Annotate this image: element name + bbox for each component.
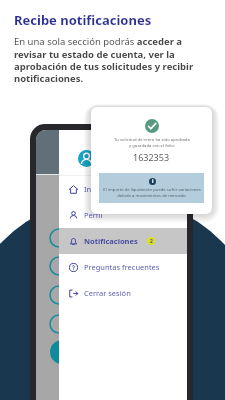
button[interactable]: Perfil de usuario [78, 150, 95, 167]
staticText: 2 [150, 238, 153, 245]
button[interactable]: Perfil [59, 202, 187, 228]
staticText: El importe de liquidación puede sufrir v… [103, 187, 201, 199]
button[interactable]: Preguntas frecuentes [59, 254, 187, 280]
staticText: Preguntas frecuentes [84, 262, 160, 272]
button[interactable]: Notificaciones [59, 228, 187, 254]
button[interactable]: Cerrar sesión [59, 280, 187, 306]
staticText: Tu solicitud de retiro ha sido aprobada … [114, 137, 190, 149]
staticText: En una sola sección podrás acceder a rev… [14, 35, 194, 84]
staticText: Cerrar sesión [84, 288, 131, 298]
staticText: Perfil [84, 210, 103, 220]
staticText: i [152, 178, 154, 185]
staticText: Notificaciones [84, 236, 138, 246]
button[interactable]: Inicio [59, 176, 187, 202]
staticText: Recibe notificaciones [14, 11, 152, 29]
staticText: Inicio [84, 184, 104, 194]
staticText: 1632353 [133, 151, 170, 163]
